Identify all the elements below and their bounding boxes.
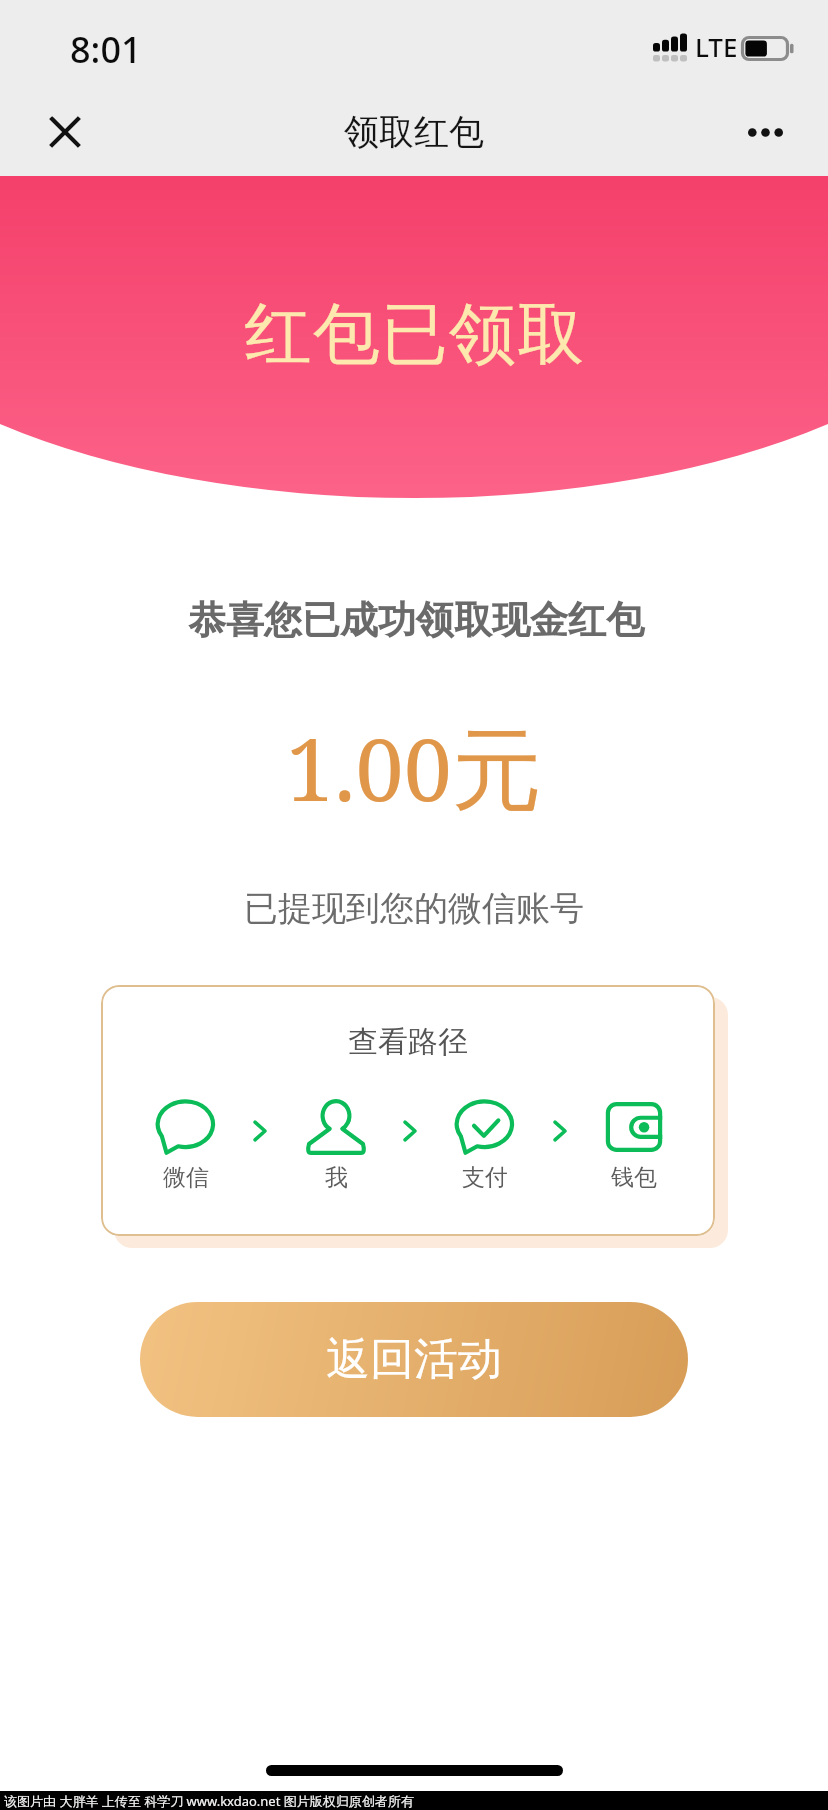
staticText: 已提现到您的微信账号 <box>244 887 584 930</box>
staticText: 红包已领取 <box>244 292 585 376</box>
button[interactable]: 微信 <box>131 1099 241 1192</box>
button[interactable]: 我 <box>281 1099 391 1192</box>
staticText: 该图片由 大胖羊 上传至 科学刀 www.kxdao.net 图片版权归原创者所… <box>4 1792 414 1810</box>
button[interactable]: 支付 <box>430 1099 540 1192</box>
button[interactable]: 返回活动 <box>140 1302 688 1417</box>
staticText: 返回活动 <box>326 1332 502 1387</box>
staticText: 查看路径 <box>348 1023 468 1061</box>
button[interactable]: Close <box>26 93 104 171</box>
staticText: 支付 <box>462 1163 508 1192</box>
staticText: 元 <box>452 714 542 827</box>
staticText: 微信 <box>163 1163 209 1192</box>
staticText: 我 <box>325 1163 348 1192</box>
staticText: 恭喜您已成功领取现金红包 <box>188 596 644 644</box>
button[interactable]: 钱包 <box>579 1099 689 1192</box>
staticText: 钱包 <box>611 1163 657 1192</box>
staticText: 8:01 <box>70 25 142 74</box>
button[interactable]: More options <box>726 93 804 171</box>
staticText: LTE <box>695 29 738 64</box>
staticText: 1.00 <box>286 709 452 826</box>
staticText: 领取红包 <box>344 110 484 154</box>
